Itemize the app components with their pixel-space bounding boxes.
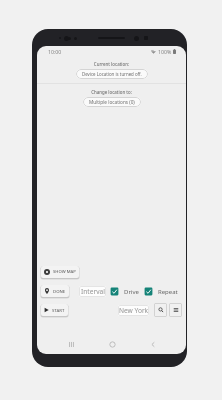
- button[interactable]: Back: [146, 337, 160, 351]
- button[interactable]: SHOW MAP: [41, 266, 79, 278]
- staticText: Device Location is turned off.: [82, 71, 142, 77]
- staticText: Multiple locations (0): [89, 99, 135, 105]
- staticText: SHOW MAP: [53, 269, 76, 275]
- button[interactable]: DONE: [41, 285, 69, 297]
- staticText: New York: [119, 306, 149, 315]
- button[interactable]: START: [41, 304, 68, 316]
- button[interactable]: Home: [105, 337, 119, 351]
- staticText: Interval: [81, 287, 105, 296]
- staticText: 100%: [158, 48, 172, 55]
- button[interactable]: Search: [154, 303, 167, 317]
- staticText: 10:00: [48, 48, 62, 55]
- staticText: START: [52, 307, 65, 313]
- button[interactable]: Menu: [169, 303, 182, 317]
- button[interactable]: Device Location is turned off.: [76, 69, 148, 79]
- button[interactable]: Recents: [64, 337, 78, 351]
- button[interactable]: New York: [118, 305, 149, 316]
- button[interactable]: Drive: [110, 287, 139, 296]
- staticText: Drive: [124, 288, 139, 296]
- staticText: Repeat: [158, 288, 178, 296]
- button[interactable]: Interval: [79, 286, 106, 297]
- staticText: Change location to:: [37, 89, 186, 95]
- staticText: DONE: [53, 288, 66, 294]
- staticText: Current location:: [37, 61, 186, 67]
- button[interactable]: Repeat: [144, 287, 178, 296]
- button[interactable]: Multiple locations (0): [83, 97, 141, 107]
